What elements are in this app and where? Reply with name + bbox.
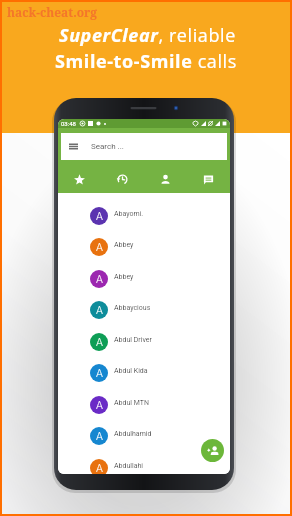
- staticText: Abdullahi: [114, 462, 144, 470]
- staticText: Abbey: [114, 273, 134, 281]
- button[interactable]: A: [58, 263, 230, 295]
- button[interactable]: A: [58, 200, 230, 232]
- staticText: A: [96, 336, 103, 349]
- button[interactable]: A: [58, 420, 230, 452]
- staticText: Abdul MTN: [114, 399, 149, 407]
- staticText: A: [96, 399, 103, 412]
- staticText: SuperClear, reliable: [59, 23, 236, 48]
- staticText: A: [96, 304, 103, 317]
- button[interactable]: A: [58, 294, 230, 326]
- button[interactable]: Add contact: [201, 439, 224, 462]
- button[interactable]: Favourites: [58, 172, 101, 187]
- button[interactable]: A: [58, 231, 230, 263]
- staticText: A: [96, 462, 103, 474]
- staticText: A: [96, 430, 103, 443]
- staticText: Abayomi.: [114, 210, 144, 218]
- staticText: Abbey: [114, 241, 134, 249]
- button[interactable]: Messages: [187, 172, 230, 187]
- button[interactable]: A: [58, 452, 230, 474]
- button[interactable]: A: [58, 389, 230, 421]
- staticText: A: [96, 241, 103, 254]
- staticText: Smile-to-Smile calls: [55, 49, 237, 74]
- button[interactable]: Search ...: [61, 133, 227, 160]
- staticText: Abdul Driver: [114, 336, 152, 344]
- staticText: Search ...: [91, 142, 124, 151]
- button[interactable]: A: [58, 357, 230, 389]
- button[interactable]: A: [58, 326, 230, 358]
- staticText: 03:48: [61, 120, 76, 127]
- button[interactable]: Contacts: [144, 172, 187, 187]
- staticText: Abdul Kida: [114, 367, 148, 375]
- staticText: Abbaycious: [114, 304, 151, 312]
- staticText: hack-cheat.org: [7, 4, 98, 20]
- staticText: A: [96, 273, 103, 286]
- staticText: Abdulhamid: [114, 430, 152, 438]
- staticText: A: [96, 367, 103, 380]
- staticText: A: [96, 210, 103, 223]
- button[interactable]: Recent calls: [101, 172, 144, 187]
